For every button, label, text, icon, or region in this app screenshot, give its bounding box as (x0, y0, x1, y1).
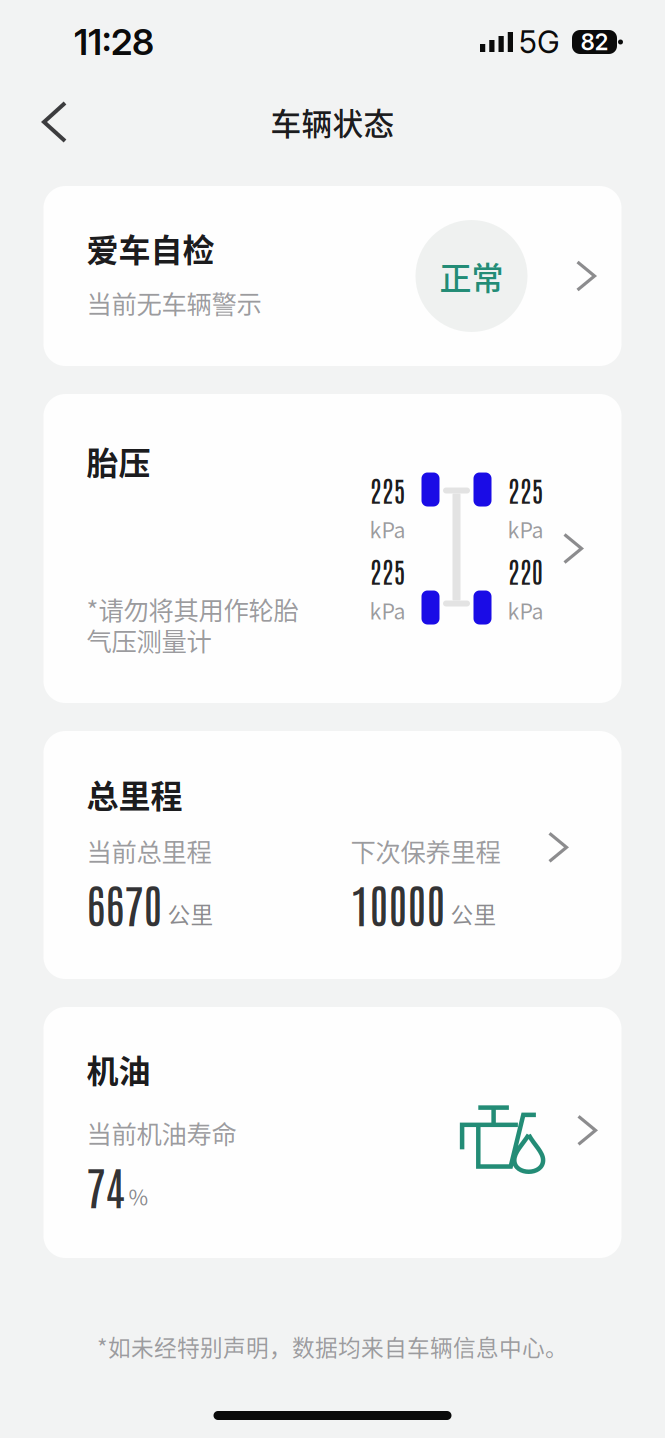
staticText: 82 (580, 28, 608, 56)
staticText: 10000 (350, 874, 445, 933)
staticText: 总里程 (86, 771, 182, 817)
staticText: 当前无车辆警示 (86, 284, 261, 321)
staticText: 公里 (450, 897, 496, 930)
staticText: 220 (507, 552, 543, 589)
button[interactable]: 总里程 (43, 731, 621, 979)
button[interactable]: 胎压 (43, 394, 621, 703)
staticText: 5G (519, 23, 560, 60)
staticText: 225 (369, 471, 405, 508)
staticText: kPa (507, 595, 543, 626)
staticText: 公里 (167, 897, 213, 930)
button[interactable]: 机油 (43, 1007, 621, 1258)
staticText: 当前总里程 (86, 832, 211, 869)
staticText: *请勿将其用作轮胎 (86, 591, 298, 627)
staticText: kPa (369, 514, 405, 544)
staticText: 机油 (86, 1046, 150, 1092)
staticText: 车辆状态 (270, 100, 394, 144)
staticText: *如未经特别声明，数据均来自车辆信息中心。 (97, 1330, 568, 1363)
staticText: kPa (369, 595, 405, 626)
staticText: 爱车自检 (86, 225, 214, 271)
staticText: 下次保养里程 (350, 832, 500, 869)
staticText: 胎压 (86, 438, 150, 484)
staticText: 当前机油寿命 (86, 1114, 236, 1151)
staticText: 6670 (86, 874, 162, 933)
staticText: 正常 (439, 253, 503, 299)
button[interactable]: 返回 (22, 87, 87, 157)
staticText: 11:28 (74, 20, 154, 64)
staticText: 74 (86, 1156, 124, 1215)
staticText: 225 (507, 471, 543, 508)
button[interactable]: 爱车自检 (43, 186, 621, 366)
staticText: 气压测量计 (86, 622, 211, 658)
staticText: % (128, 1181, 148, 1212)
staticText: 225 (369, 552, 405, 589)
staticText: kPa (507, 514, 543, 544)
